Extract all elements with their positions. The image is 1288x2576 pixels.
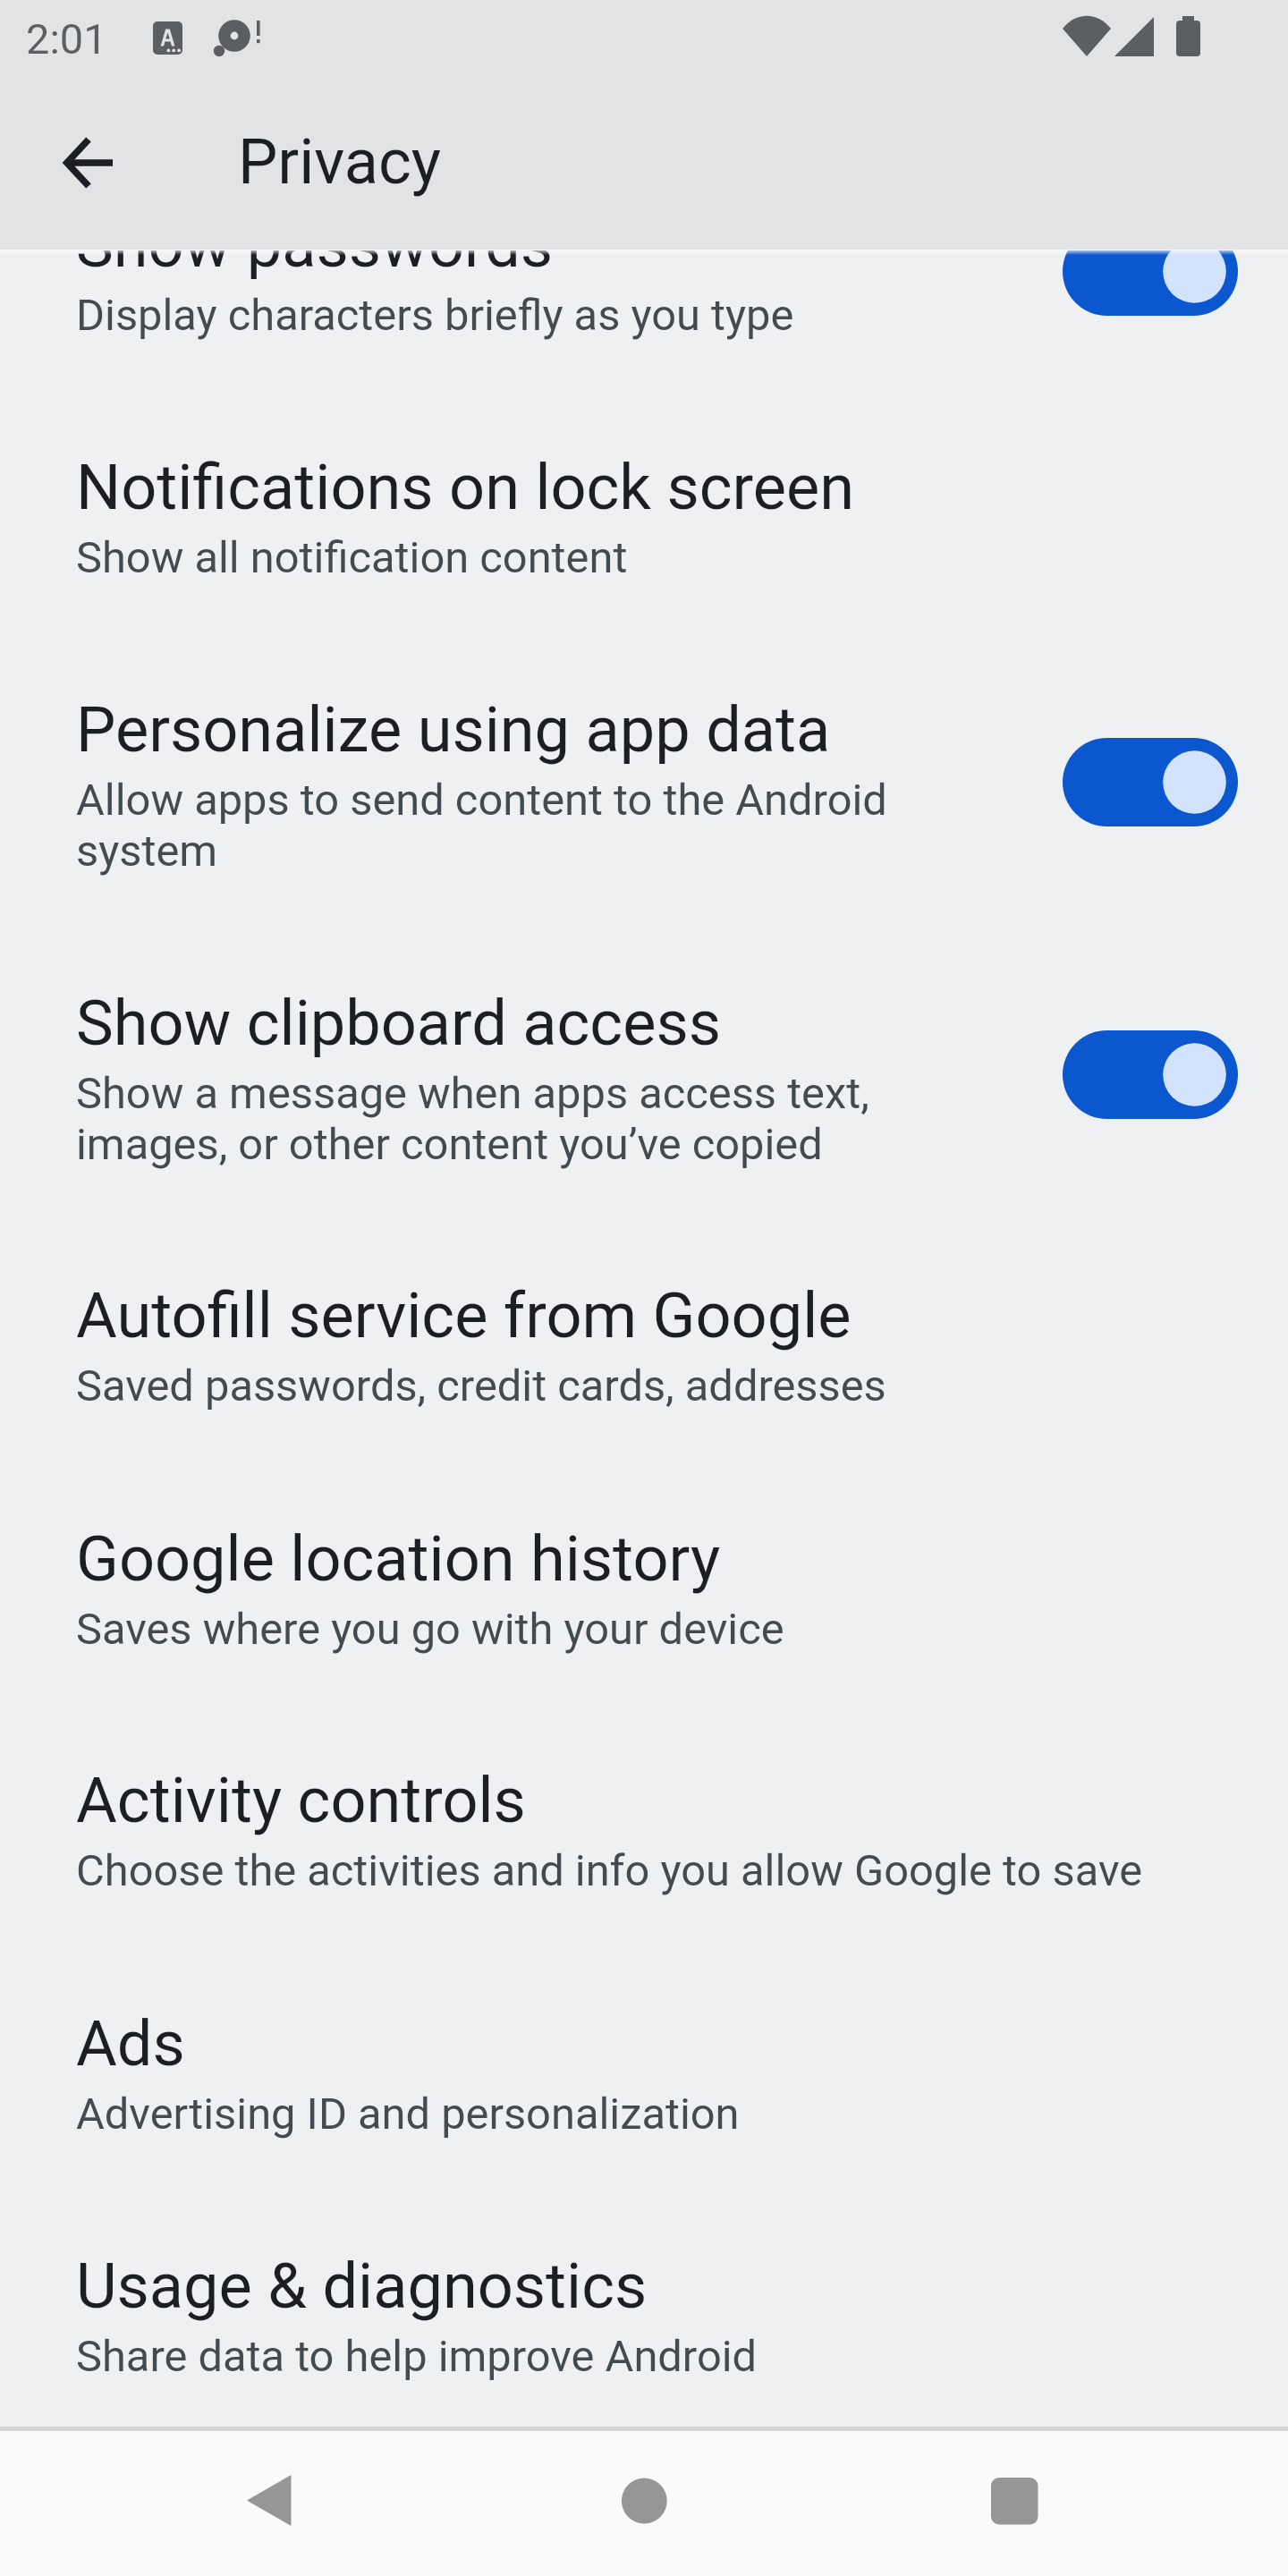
- button[interactable]: Usage & diagnostics: [0, 2194, 1288, 2426]
- staticText: Google location history: [76, 1522, 1212, 1596]
- staticText: Privacy: [238, 125, 442, 199]
- button[interactable]: Toggle setting: [1063, 1030, 1238, 1119]
- staticText: Usage & diagnostics: [76, 2250, 1212, 2323]
- staticText: Ads: [76, 2007, 1212, 2080]
- button[interactable]: Personalize using app data: [0, 638, 1288, 931]
- button[interactable]: Show passwords: [0, 153, 1288, 395]
- staticText: Autofill service from Google: [76, 1279, 1212, 1352]
- button[interactable]: Back: [215, 2448, 322, 2555]
- button[interactable]: Navigate up: [38, 113, 138, 213]
- staticText: Personalize using app data: [76, 693, 1013, 767]
- button[interactable]: Toggle setting: [1063, 738, 1238, 826]
- staticText: Show clipboard access: [76, 987, 1013, 1060]
- staticText: Display characters briefly as you type: [76, 290, 1013, 341]
- staticText: Allow apps to send content to the Androi…: [76, 775, 1013, 877]
- button[interactable]: Ads: [0, 1952, 1288, 2194]
- staticText: Notifications on lock screen: [76, 451, 1212, 524]
- button[interactable]: Home: [590, 2448, 698, 2555]
- staticText: 2:01: [26, 14, 107, 64]
- staticText: Choose the activities and info you allow…: [76, 1845, 1212, 1896]
- button[interactable]: Show clipboard access: [0, 931, 1288, 1224]
- staticText: Saved passwords, credit cards, addresses: [76, 1360, 1212, 1411]
- staticText: Saves where you go with your device: [76, 1604, 1212, 1655]
- staticText: Advertising ID and personalization: [76, 2089, 1212, 2140]
- staticText: Share data to help improve Android: [76, 2331, 1212, 2382]
- button[interactable]: Toggle setting: [1063, 227, 1238, 316]
- button[interactable]: Google location history: [0, 1467, 1288, 1708]
- staticText: Show all notification content: [76, 532, 1212, 583]
- staticText: Activity controls: [76, 1764, 1212, 1837]
- button[interactable]: Notifications on lock screen: [0, 395, 1288, 638]
- staticText: Show passwords: [76, 208, 1013, 282]
- button[interactable]: Recent apps: [961, 2448, 1068, 2555]
- staticText: Show a message when apps access text, im…: [76, 1068, 1013, 1170]
- button[interactable]: Activity controls: [0, 1708, 1288, 1952]
- button[interactable]: Autofill service from Google: [0, 1224, 1288, 1467]
